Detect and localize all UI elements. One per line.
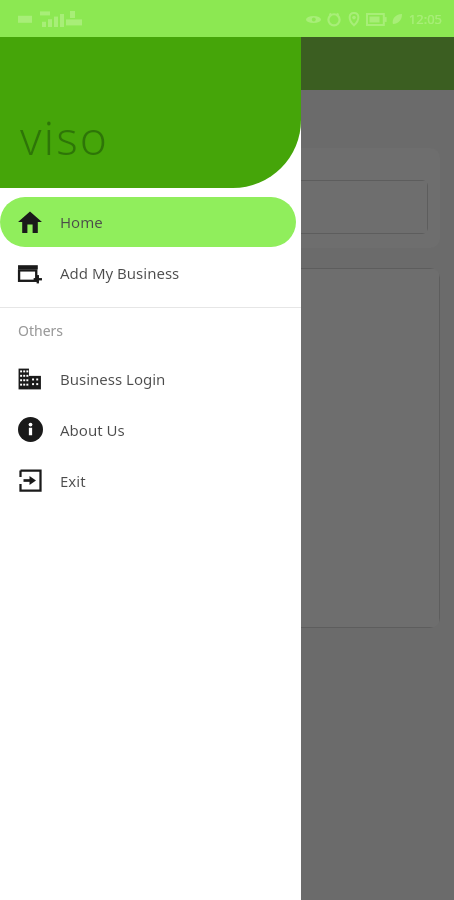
staticText: Add My Business: [60, 263, 180, 283]
staticText: viso: [20, 106, 109, 169]
staticText: Home: [60, 212, 103, 232]
staticText: Exit: [60, 471, 86, 491]
button[interactable]: Home: [0, 197, 296, 247]
button[interactable]: Exit: [0, 455, 301, 506]
button[interactable]: Business Login: [0, 353, 301, 404]
staticText: Business Login: [60, 369, 166, 389]
button[interactable]: About Us: [0, 404, 301, 455]
staticText: 12:05: [408, 10, 442, 28]
staticText: About Us: [60, 420, 125, 440]
button[interactable]: Add My Business: [0, 247, 301, 298]
staticText: Others: [18, 321, 64, 340]
